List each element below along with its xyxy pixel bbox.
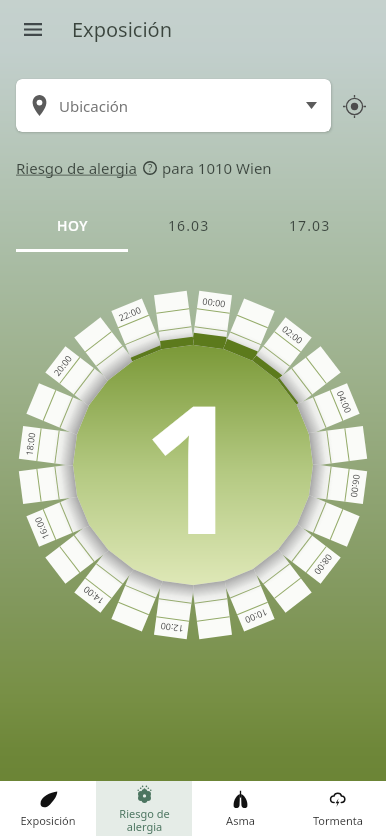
- staticText: HOY: [57, 216, 88, 235]
- staticText: Exposición: [20, 813, 76, 828]
- button[interactable]: Help: [142, 160, 158, 176]
- button[interactable]: 16.03: [128, 210, 250, 252]
- staticText: Asma: [226, 813, 255, 828]
- staticText: ?: [148, 161, 153, 175]
- button[interactable]: HOY: [16, 210, 128, 252]
- staticText: Ubicación: [59, 96, 129, 116]
- staticText: Tormenta: [313, 813, 363, 828]
- button[interactable]: Menu: [11, 7, 55, 51]
- staticText: 1: [142, 345, 244, 586]
- button[interactable]: Riesgo de alergia: [96, 781, 192, 836]
- button[interactable]: Ubicación: [16, 79, 331, 132]
- staticText: Exposición: [72, 16, 173, 43]
- button[interactable]: Exposición: [0, 781, 96, 836]
- staticText: 17.03: [289, 216, 331, 235]
- button[interactable]: Riesgo de alergia: [16, 158, 137, 178]
- staticText: Riesgo de alergia: [119, 806, 170, 834]
- staticText: 16.03: [168, 216, 210, 235]
- button[interactable]: Use my location: [334, 86, 374, 126]
- button[interactable]: Asma: [192, 781, 289, 836]
- button[interactable]: Tormenta: [289, 781, 386, 836]
- button[interactable]: 17.03: [250, 210, 370, 252]
- staticText: para 1010 Wien: [162, 158, 272, 178]
